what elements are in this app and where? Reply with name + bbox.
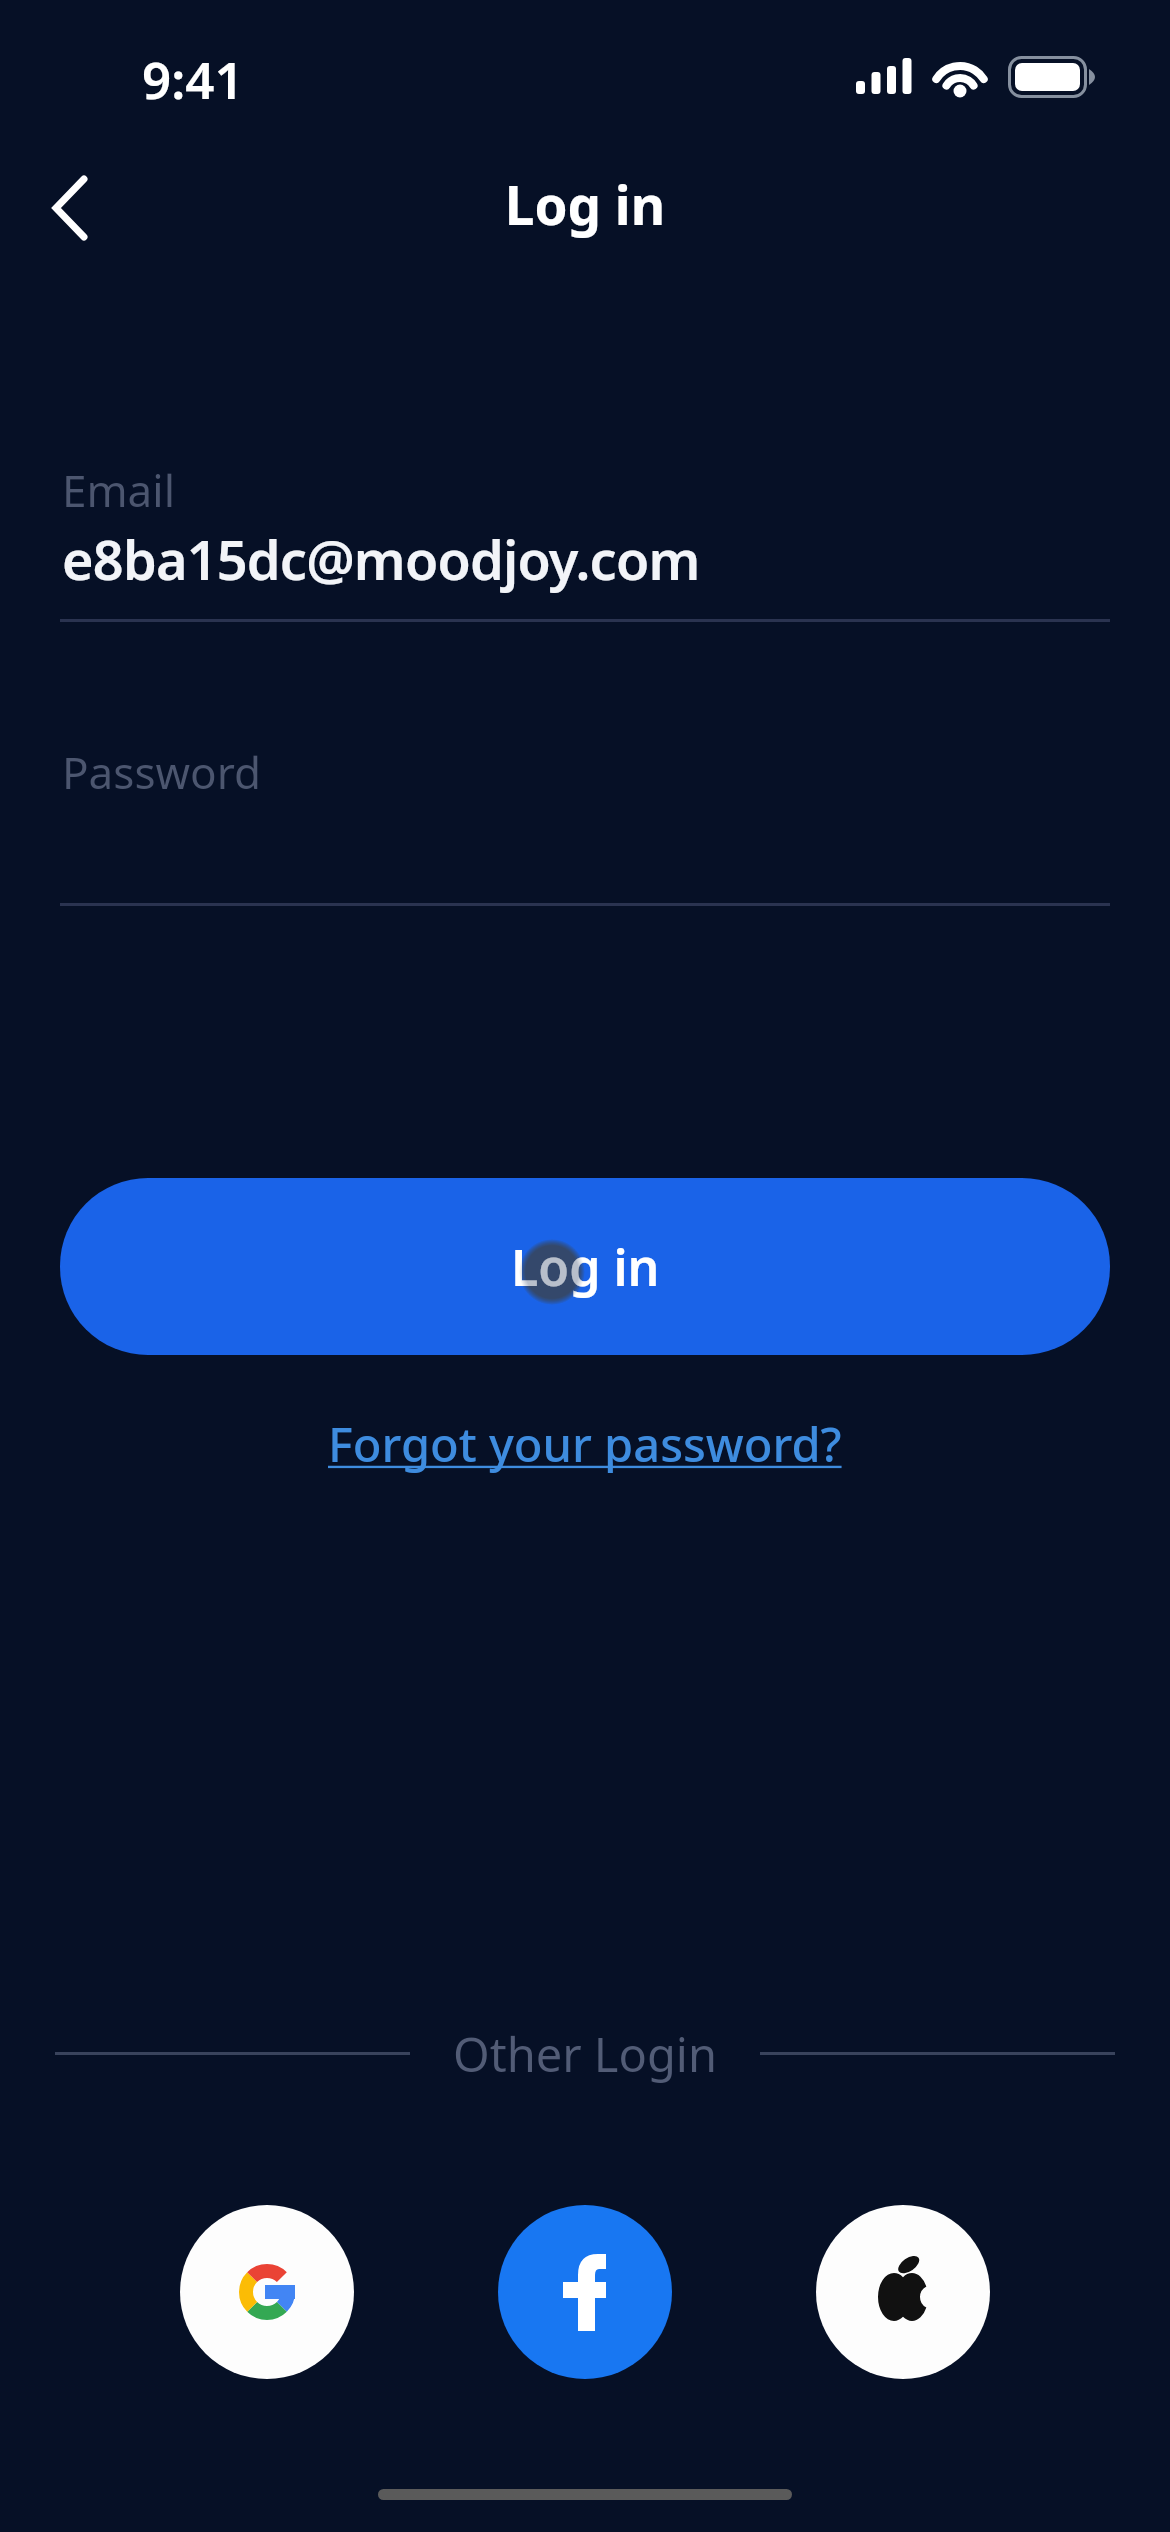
button[interactable]	[180, 2205, 354, 2379]
staticText: Other Login	[0, 2022, 1170, 2086]
button[interactable]	[498, 2205, 672, 2379]
staticText: Log in	[0, 168, 1170, 240]
button[interactable]	[30, 168, 110, 248]
staticText: Log in	[511, 1233, 660, 1301]
button[interactable]: Log in	[60, 1178, 1110, 1355]
staticText: Email	[62, 460, 175, 520]
staticText: 9:41	[142, 44, 244, 113]
button[interactable]: Forgot your password?	[328, 1412, 842, 1476]
staticText: e8ba15dc@moodjoy.com	[62, 522, 700, 596]
button[interactable]	[816, 2205, 990, 2379]
staticText: Password	[62, 742, 262, 802]
